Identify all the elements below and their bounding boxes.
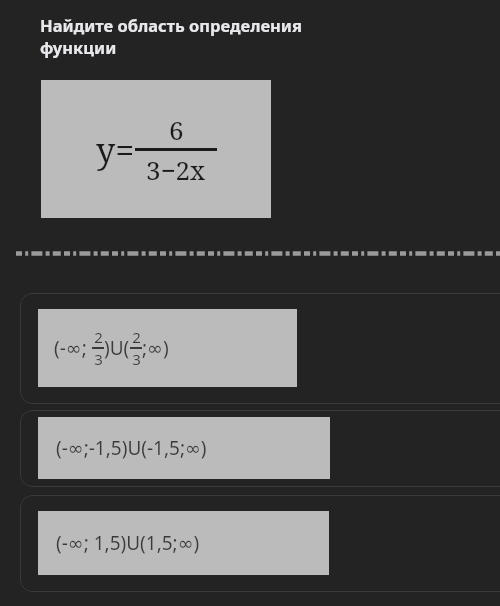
staticText: (-∞;-1,5)U(-1,5;∞) — [56, 435, 207, 461]
staticText: 6 — [169, 112, 184, 147]
button[interactable]: (-∞;-1,5)U(-1,5;∞) — [20, 410, 500, 487]
staticText: 2 — [94, 327, 103, 347]
staticText: (-∞; 1,5)U(1,5;∞) — [56, 530, 200, 556]
staticText: 2 — [132, 327, 141, 347]
staticText: Найдите область определения — [40, 14, 302, 36]
staticText: )U( — [104, 335, 130, 361]
staticText: y= — [96, 127, 135, 173]
staticText: функции — [40, 36, 117, 58]
staticText: 3−2x — [146, 152, 206, 187]
staticText: ;∞) — [142, 335, 169, 361]
staticText: 3 — [132, 349, 141, 369]
staticText: 3 — [94, 349, 103, 369]
button[interactable]: (-∞; — [20, 293, 500, 404]
button[interactable]: (-∞; 1,5)U(1,5;∞) — [20, 495, 500, 592]
staticText: (-∞; — [54, 335, 92, 361]
